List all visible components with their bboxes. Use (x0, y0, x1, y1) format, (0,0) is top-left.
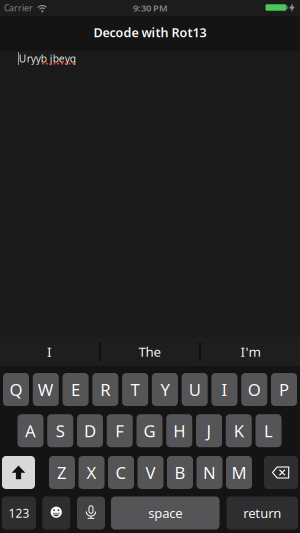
button[interactable]: C (108, 456, 134, 489)
button[interactable]: I (0, 337, 99, 366)
button[interactable]: J (196, 414, 222, 447)
staticText: K (234, 419, 244, 442)
staticText: I (47, 342, 52, 361)
staticText: W (38, 378, 54, 401)
staticText: 9:30 PM (133, 2, 168, 14)
staticText: Y (160, 378, 169, 401)
staticText: A (25, 419, 36, 442)
staticText: X (86, 461, 96, 484)
staticText: F (115, 419, 124, 442)
button[interactable]: Delete (264, 456, 298, 489)
staticText: P (279, 378, 289, 401)
staticText: U (189, 378, 201, 401)
button[interactable]: Shift (2, 456, 35, 489)
button[interactable]: Dictate (77, 496, 105, 529)
button[interactable]: return (226, 496, 298, 529)
button[interactable]: V (137, 456, 163, 489)
staticText: Uryyb jbeyq (19, 51, 76, 65)
button[interactable]: A (17, 414, 43, 447)
button[interactable]: D (77, 414, 103, 447)
staticText: L (264, 419, 273, 442)
staticText: T (131, 378, 140, 401)
button[interactable]: Emoji (42, 496, 70, 529)
button[interactable]: Q (3, 373, 29, 406)
button[interactable]: E (63, 373, 89, 406)
button[interactable]: U (182, 373, 208, 406)
button[interactable]: W (33, 373, 59, 406)
staticText: B (174, 461, 185, 484)
button[interactable]: S (47, 414, 73, 447)
staticText: D (84, 419, 96, 442)
staticText: I'm (240, 342, 260, 361)
button[interactable]: X (78, 456, 104, 489)
button[interactable]: P (271, 373, 297, 406)
button[interactable]: space (111, 496, 219, 529)
staticText: Decode with Rot13 (93, 24, 206, 41)
button[interactable]: O (241, 373, 267, 406)
staticText: Z (57, 461, 67, 484)
staticText: Q (9, 378, 22, 401)
button[interactable]: B (167, 456, 193, 489)
staticText: G (143, 419, 155, 442)
button[interactable]: Z (49, 456, 75, 489)
staticText: V (145, 461, 155, 484)
staticText: N (203, 461, 216, 484)
button[interactable]: K (226, 414, 252, 447)
staticText: H (173, 419, 185, 442)
staticText: I (221, 378, 227, 401)
button[interactable]: I (211, 373, 237, 406)
staticText: The (138, 342, 161, 361)
button[interactable]: L (255, 414, 281, 447)
button[interactable]: H (166, 414, 192, 447)
staticText: C (115, 461, 126, 484)
button[interactable]: Y (152, 373, 178, 406)
staticText: O (248, 378, 261, 401)
button[interactable]: N (196, 456, 222, 489)
staticText: J (206, 419, 211, 442)
staticText: return (243, 504, 281, 522)
staticText: space (148, 504, 182, 522)
staticText: E (71, 378, 80, 401)
staticText: S (56, 419, 65, 442)
button[interactable]: R (92, 373, 118, 406)
staticText: 123 (8, 505, 29, 521)
button[interactable]: I'm (201, 337, 300, 366)
staticText: R (100, 378, 110, 401)
button[interactable]: 123 (2, 496, 36, 529)
button[interactable]: M (226, 456, 252, 489)
button[interactable]: G (136, 414, 162, 447)
button[interactable]: T (122, 373, 148, 406)
button[interactable]: F (107, 414, 133, 447)
staticText: Carrier (4, 2, 33, 14)
staticText: M (231, 461, 246, 484)
button[interactable]: The (101, 337, 199, 366)
